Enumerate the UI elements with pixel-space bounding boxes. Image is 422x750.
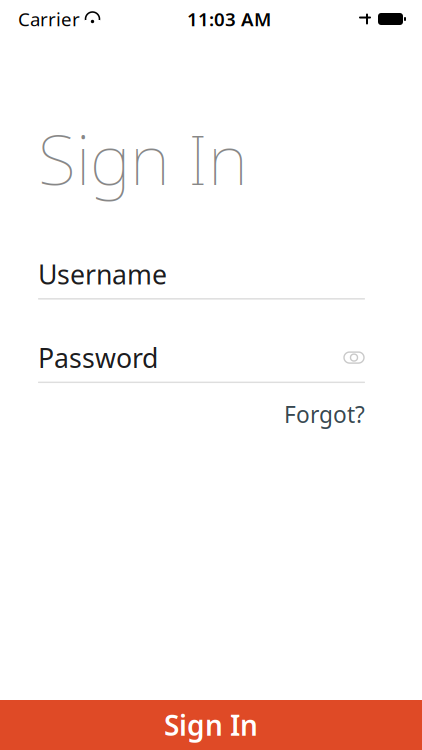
button[interactable]: Forgot?: [270, 393, 365, 435]
button[interactable]: Password: [0, 344, 422, 383]
button[interactable]: Username: [0, 260, 422, 300]
staticText: Forgot?: [284, 399, 365, 429]
staticText: Sign In: [164, 706, 258, 744]
staticText: Carrier: [18, 7, 80, 31]
staticText: Sign In: [38, 112, 248, 204]
staticText: Username: [38, 256, 167, 292]
staticText: Password: [38, 340, 158, 375]
button[interactable]: Sign In: [0, 700, 422, 750]
staticText: 11:03 AM: [187, 7, 271, 31]
